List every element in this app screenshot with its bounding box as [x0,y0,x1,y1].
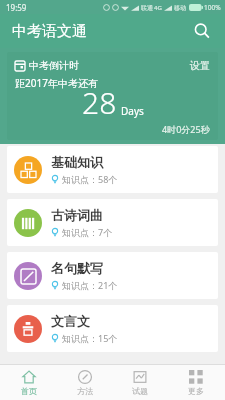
staticText: 知识点：7个 [62,226,113,238]
staticText: 知识点：15个 [62,332,118,344]
staticText: 试题 [132,386,148,396]
staticText: 文言文 [51,313,90,329]
button[interactable]: 基础知识 [7,146,218,193]
staticText: 距2017年中考还有 [15,76,98,90]
button[interactable]: 方法 [59,368,111,398]
staticText: 4G [154,4,162,12]
staticText: 联通 [141,4,153,12]
staticText: 100% [204,3,221,12]
button[interactable]: Search [189,18,215,44]
staticText: 知识点：58个 [62,173,118,185]
button[interactable]: 试题 [114,368,166,398]
staticText: 基础知识 [51,154,103,170]
staticText: 中考倒计时 [29,59,79,72]
button[interactable]: 中考倒计时 [7,52,218,140]
button[interactable]: 更多 [170,368,222,398]
button[interactable]: 首页 [3,368,55,398]
staticText: 移动 [174,4,186,12]
staticText: 中考语文通 [12,22,87,41]
button[interactable]: 古诗词曲 [7,199,218,246]
staticText: 19:59 [6,2,27,13]
staticText: 名句默写 [51,260,103,276]
staticText: 更多 [188,386,204,396]
staticText: 28 [82,82,117,123]
button[interactable]: 文言文 [7,305,218,352]
staticText: 首页 [21,386,37,396]
staticText: 古诗词曲 [51,207,103,223]
staticText: 方法 [77,386,93,396]
staticText: Days [121,104,144,118]
staticText: 知识点：21个 [62,279,118,291]
staticText: 4时0分25秒 [162,123,210,135]
button[interactable]: 设置 [190,59,210,72]
button[interactable]: 名句默写 [7,252,218,299]
